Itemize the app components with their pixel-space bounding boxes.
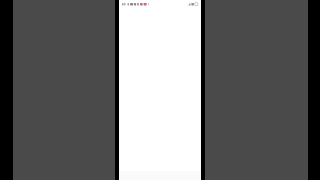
button[interactable]: Status bar — [119, 0, 201, 180]
other: Phone device frame — [115, 0, 205, 180]
button[interactable]: Status bar — [119, 0, 201, 10]
